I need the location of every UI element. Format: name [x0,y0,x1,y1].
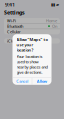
button[interactable]: Allow [32,78,51,85]
button[interactable]: iCloud [4,38,60,43]
button[interactable]: Wi-Fi [4,18,60,23]
staticText: Allow “Maps” to use your location? [16,37,47,53]
button[interactable]: Cellular [4,29,60,34]
staticText: Wi-Fi [7,18,16,23]
staticText: On [52,23,57,29]
button[interactable]: Bluetooth [4,24,60,29]
staticText: Your location is used to show nearby pla… [16,54,47,75]
staticText: 9:41 [5,1,15,8]
staticText: iCloud [7,38,18,43]
staticText: Settings [4,9,25,16]
staticText: Bluetooth [7,23,23,29]
staticText: Cancel [16,79,28,84]
staticText: Home [46,18,57,23]
staticText: ▮▮ ▰ [51,2,59,7]
staticText: Allow [37,79,47,84]
staticText: Cellular [7,29,21,34]
button[interactable]: Cancel [12,78,32,85]
